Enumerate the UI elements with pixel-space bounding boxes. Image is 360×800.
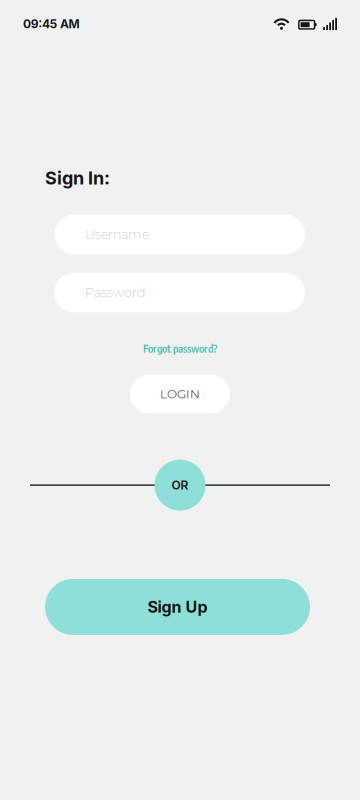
- staticText: OR: [171, 478, 188, 492]
- staticText: Password: [85, 285, 146, 300]
- staticText: Sign Up: [147, 597, 207, 617]
- button[interactable]: Password: [54, 273, 305, 312]
- button[interactable]: Username: [54, 215, 305, 254]
- staticText: Forgot password?: [143, 342, 217, 355]
- button[interactable]: Forgot password?: [135, 339, 225, 358]
- button[interactable]: Sign Up: [45, 579, 310, 635]
- staticText: Username: [85, 227, 149, 242]
- button[interactable]: LOGIN: [130, 375, 230, 413]
- staticText: Sign In:: [45, 167, 110, 189]
- staticText: LOGIN: [160, 386, 200, 401]
- staticText: 09:45 AM: [23, 17, 80, 31]
